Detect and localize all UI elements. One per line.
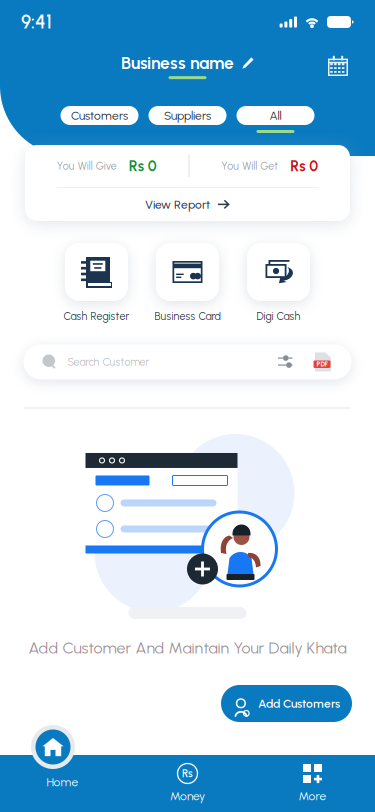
staticText: Cash Register xyxy=(63,310,129,322)
button[interactable]: Home xyxy=(0,755,125,812)
staticText: All xyxy=(269,108,281,122)
staticText: Business name xyxy=(121,53,234,73)
button[interactable]: Calendar xyxy=(323,51,353,81)
button[interactable]: Customers xyxy=(60,106,138,133)
staticText: Customers xyxy=(71,108,128,122)
staticText: Business Card xyxy=(154,310,220,322)
staticText: 9:41 xyxy=(21,11,52,33)
staticText: Suppliers xyxy=(164,108,211,122)
staticText: Add Customers xyxy=(258,696,340,710)
staticText: Home xyxy=(46,775,78,789)
button[interactable]: Business Card xyxy=(142,243,233,322)
staticText: You Will Get xyxy=(221,160,278,172)
button[interactable]: Cash Register xyxy=(51,243,142,322)
staticText: Add Customer And Maintain Your Daily Kha… xyxy=(28,638,346,657)
staticText: Money xyxy=(170,789,205,803)
button[interactable]: All xyxy=(236,106,314,133)
button[interactable]: Rs xyxy=(125,755,250,812)
button[interactable]: More xyxy=(250,755,375,812)
button[interactable]: Filter xyxy=(268,344,302,379)
staticText: More xyxy=(298,789,326,803)
staticText: Rs 0 xyxy=(290,157,318,175)
staticText: Rs xyxy=(182,767,193,780)
button[interactable]: View Report xyxy=(25,188,350,221)
staticText: You Will Give xyxy=(57,160,117,172)
staticText: PDF xyxy=(316,360,327,368)
button[interactable]: Home xyxy=(31,725,75,769)
button[interactable]: Suppliers xyxy=(148,106,226,133)
staticText: Rs 0 xyxy=(129,157,157,175)
staticText: View Report xyxy=(145,197,210,211)
button[interactable]: Digi Cash xyxy=(233,243,324,322)
staticText: Search Customer xyxy=(67,356,149,368)
button[interactable]: Add Customers xyxy=(221,685,352,722)
staticText: Digi Cash xyxy=(256,310,300,322)
button[interactable]: Export PDF xyxy=(309,344,337,379)
